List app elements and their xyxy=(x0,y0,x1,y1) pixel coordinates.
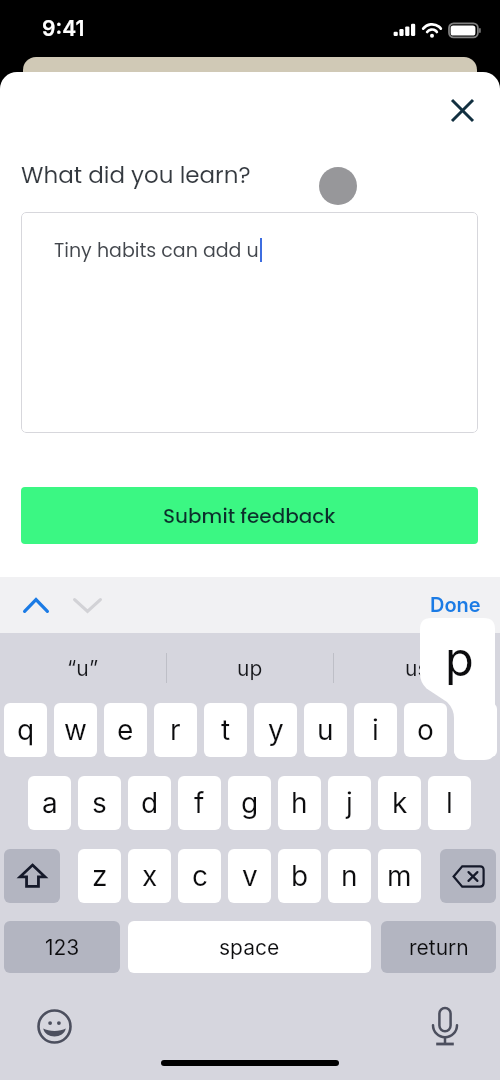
staticText: r xyxy=(170,713,181,747)
staticText: 9:41 xyxy=(42,16,85,41)
staticText: x xyxy=(142,859,158,893)
button[interactable]: l xyxy=(428,776,471,830)
button[interactable]: up xyxy=(167,633,333,703)
button[interactable]: i xyxy=(354,703,397,757)
button[interactable]: t xyxy=(204,703,247,757)
staticText: Submit feedback xyxy=(163,502,336,530)
button[interactable]: e xyxy=(104,703,147,757)
button[interactable]: 123 xyxy=(4,921,120,973)
button[interactable]: s xyxy=(78,776,121,830)
button[interactable]: Emoji keyboard xyxy=(32,1004,77,1049)
staticText: return xyxy=(409,935,469,960)
button[interactable]: Tiny habits can add u xyxy=(21,212,478,433)
button[interactable]: r xyxy=(154,703,197,757)
button[interactable]: return xyxy=(381,921,496,973)
staticText: space xyxy=(219,935,280,960)
button[interactable]: b xyxy=(278,849,321,903)
button[interactable]: v xyxy=(228,849,271,903)
button[interactable]: Close xyxy=(440,88,484,132)
staticText: What did you learn? xyxy=(21,159,251,191)
staticText: c xyxy=(192,859,208,893)
button[interactable]: g xyxy=(228,776,271,830)
button[interactable]: o xyxy=(404,703,447,757)
staticText: d xyxy=(141,786,159,820)
staticText: w xyxy=(64,713,87,747)
staticText: q xyxy=(17,713,35,747)
button[interactable]: Backspace xyxy=(440,849,496,903)
staticText: l xyxy=(446,786,453,820)
button[interactable]: f xyxy=(178,776,221,830)
staticText: up xyxy=(237,656,263,681)
button[interactable]: Shift xyxy=(4,849,60,903)
staticText: “u” xyxy=(67,656,99,681)
staticText: v xyxy=(242,859,258,893)
staticText: s xyxy=(92,786,107,820)
staticText: t xyxy=(221,713,231,747)
staticText: b xyxy=(291,859,309,893)
button[interactable]: j xyxy=(328,776,371,830)
button[interactable]: Dictate xyxy=(422,1003,468,1049)
staticText: g xyxy=(241,786,259,820)
staticText: us xyxy=(405,656,429,681)
staticText: y xyxy=(268,713,284,747)
button[interactable]: Submit feedback xyxy=(21,487,478,544)
staticText: k xyxy=(392,786,408,820)
staticText: h xyxy=(291,786,308,820)
staticText: Done xyxy=(430,593,481,617)
button[interactable]: u xyxy=(304,703,347,757)
button[interactable]: us xyxy=(334,633,500,703)
staticText: Tiny habits can add u xyxy=(54,237,259,264)
staticText: a xyxy=(42,786,58,820)
button[interactable]: n xyxy=(328,849,371,903)
button[interactable]: x xyxy=(128,849,171,903)
button[interactable]: space xyxy=(128,921,371,973)
button[interactable]: Done xyxy=(424,583,486,627)
button[interactable]: Previous field xyxy=(14,583,58,627)
staticText: i xyxy=(372,713,379,747)
staticText: m xyxy=(387,859,412,893)
staticText: z xyxy=(92,859,108,893)
button[interactable]: y xyxy=(254,703,297,757)
staticText: p xyxy=(445,630,474,687)
staticText: j xyxy=(346,786,353,820)
button[interactable]: q xyxy=(4,703,47,757)
button[interactable]: h xyxy=(278,776,321,830)
button[interactable]: m xyxy=(378,849,421,903)
staticText: e xyxy=(117,713,134,747)
staticText: f xyxy=(194,786,205,820)
button[interactable]: d xyxy=(128,776,171,830)
button[interactable]: “u” xyxy=(0,633,166,703)
button[interactable]: w xyxy=(54,703,97,757)
button[interactable]: p xyxy=(454,703,497,757)
staticText: u xyxy=(317,713,334,747)
button[interactable]: k xyxy=(378,776,421,830)
staticText: 123 xyxy=(45,935,80,960)
staticText: n xyxy=(341,859,358,893)
button[interactable]: z xyxy=(78,849,121,903)
button[interactable]: c xyxy=(178,849,221,903)
button[interactable]: a xyxy=(28,776,71,830)
button[interactable]: Next field xyxy=(65,583,109,627)
staticText: o xyxy=(417,713,434,747)
